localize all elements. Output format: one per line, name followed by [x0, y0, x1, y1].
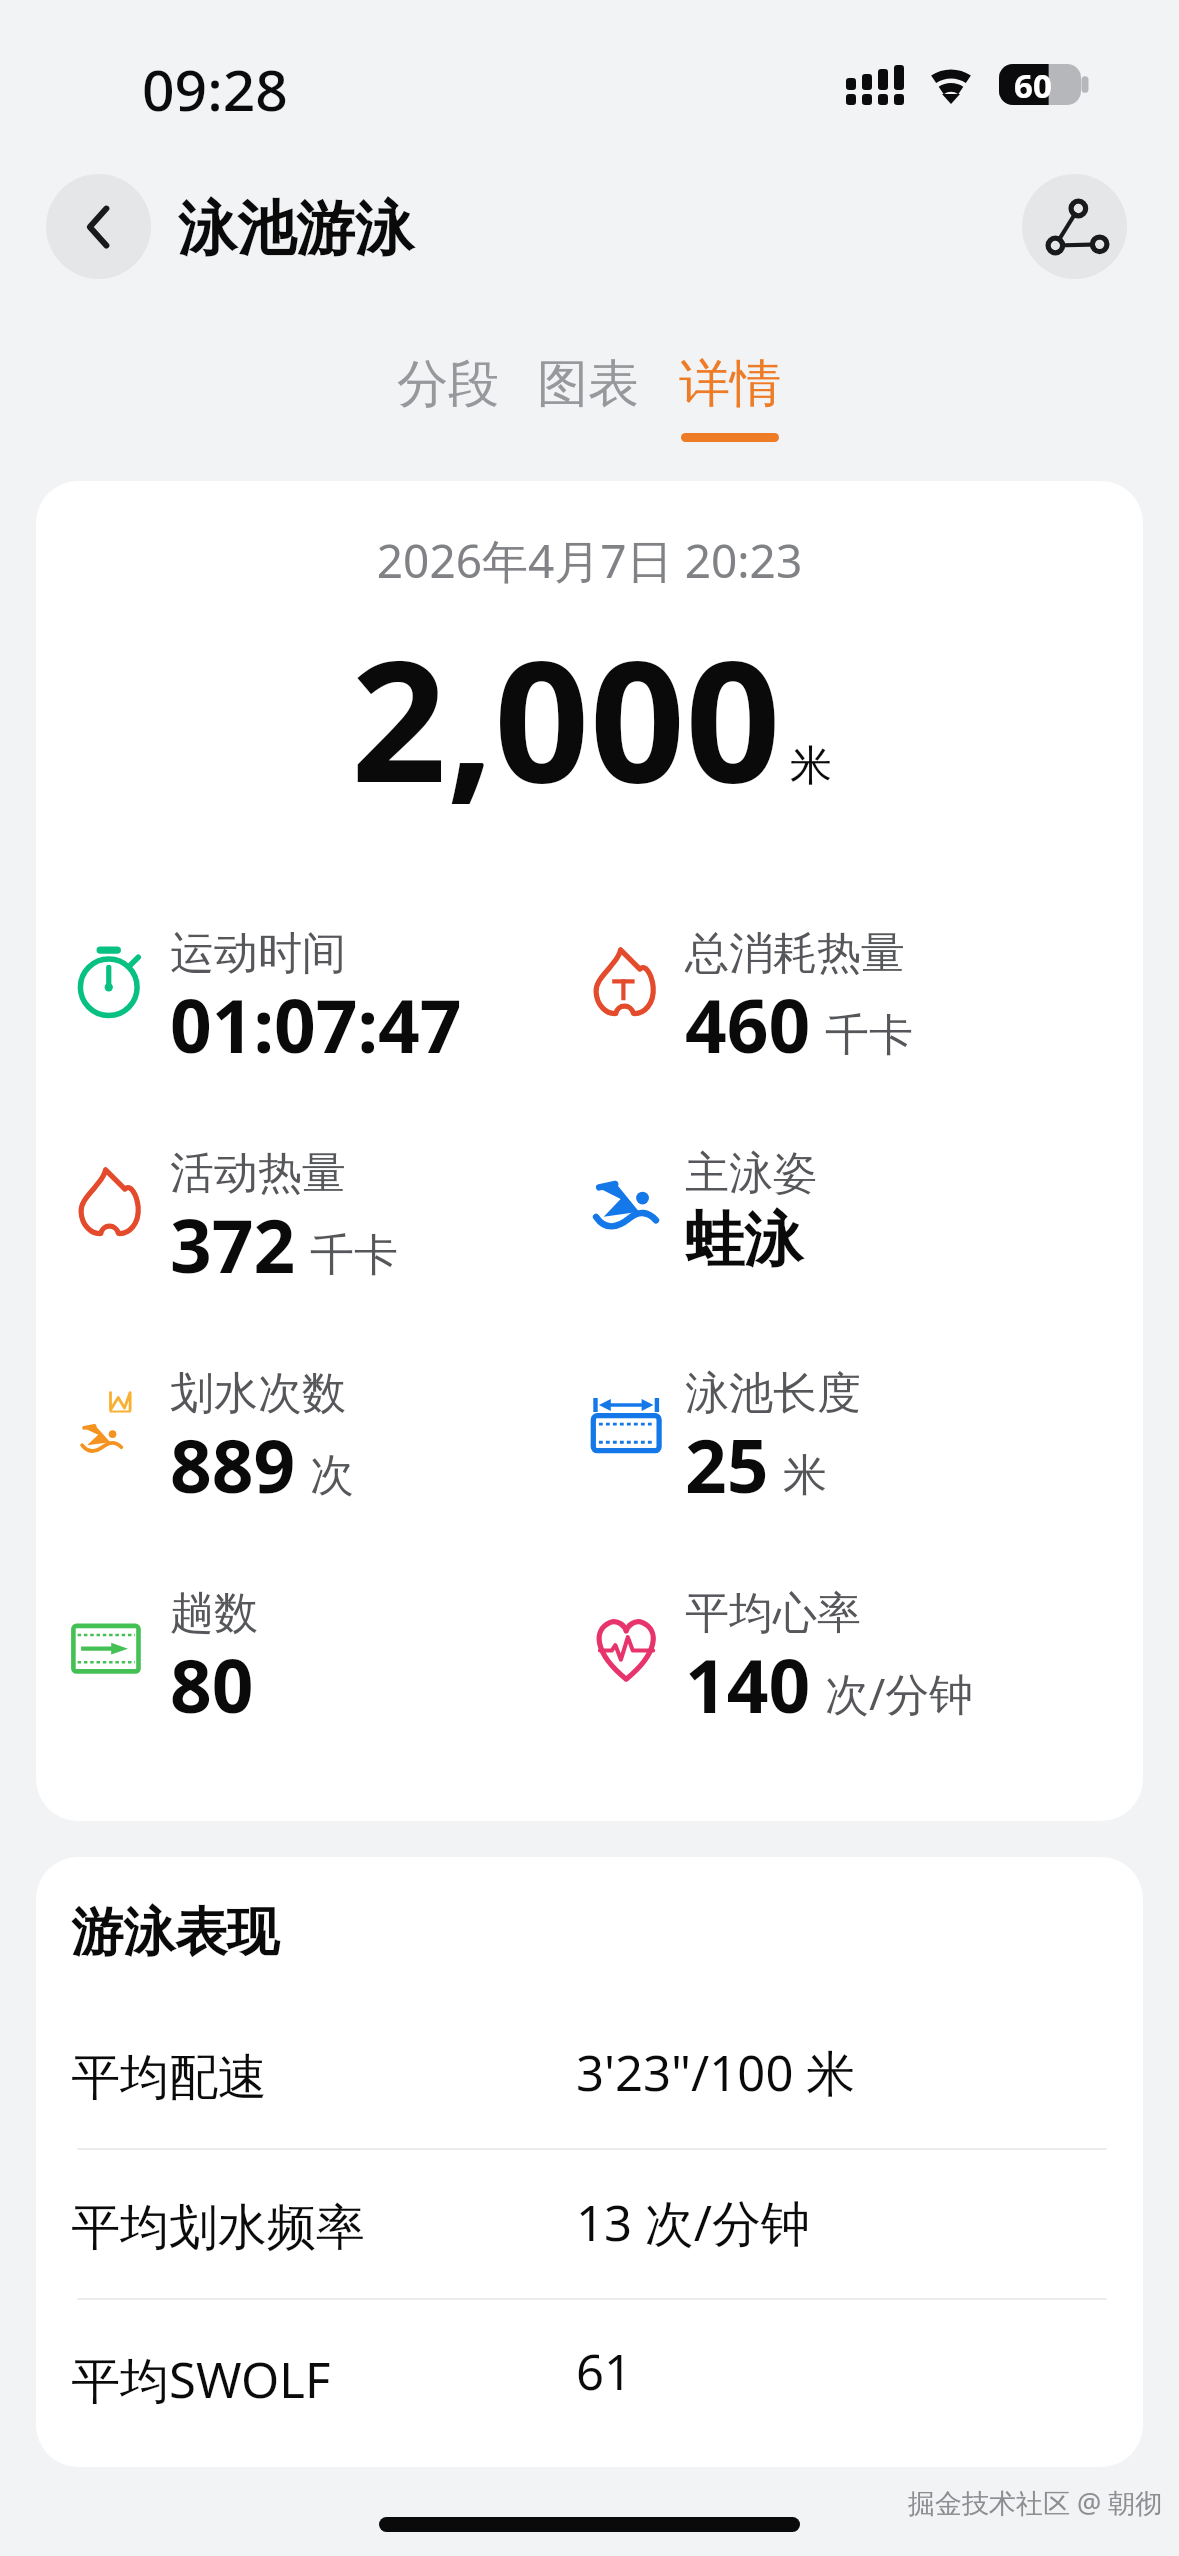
staticText: 460: [685, 975, 811, 1074]
staticText: 趟数: [170, 1586, 258, 1641]
staticText: 泳池游泳: [178, 192, 414, 266]
staticText: 米: [790, 740, 832, 793]
staticText: 2026年4月7日 20:23: [36, 529, 1143, 592]
staticText: 运动时间: [170, 926, 346, 981]
staticText: 3'23"/100 米: [576, 2039, 856, 2106]
staticText: 主泳姿: [685, 1146, 817, 1201]
staticText: 平均心率: [685, 1586, 861, 1641]
button[interactable]: 平均SWOLF: [36, 2305, 1143, 2455]
staticText: 游泳表现: [71, 1900, 279, 1966]
staticText: 详情: [679, 352, 781, 416]
staticText: 米: [783, 1448, 827, 1503]
staticText: 蛙泳: [685, 1203, 803, 1277]
staticText: 千卡: [310, 1228, 398, 1283]
staticText: 次: [310, 1448, 354, 1503]
staticText: 140: [685, 1635, 811, 1734]
staticText: 2,000: [351, 603, 781, 830]
staticText: 889: [170, 1415, 296, 1514]
staticText: 60: [1014, 63, 1052, 104]
staticText: 01:07:47: [170, 975, 462, 1074]
staticText: 次/分钟: [825, 1663, 974, 1723]
staticText: 平均SWOLF: [71, 2346, 611, 2413]
button[interactable]: 图表: [526, 352, 649, 433]
button[interactable]: 平均划水频率: [36, 2156, 1143, 2306]
staticText: 09:28: [142, 50, 288, 128]
staticText: 80: [170, 1635, 254, 1734]
staticText: 千卡: [825, 1008, 913, 1063]
button[interactable]: Share: [1022, 174, 1127, 279]
staticText: 总消耗热量: [685, 926, 905, 981]
staticText: 25: [685, 1415, 769, 1514]
button[interactable]: Back: [46, 174, 151, 279]
staticText: 61: [576, 2338, 633, 2405]
staticText: 活动热量: [170, 1146, 346, 1201]
staticText: 图表: [537, 352, 639, 416]
staticText: 372: [170, 1195, 296, 1294]
button[interactable]: 详情: [668, 352, 791, 442]
staticText: 平均配速: [71, 2047, 611, 2109]
staticText: 平均划水频率: [71, 2197, 611, 2259]
staticText: 划水次数: [170, 1366, 346, 1421]
staticText: 掘金技术社区 @ 朝彻: [908, 2484, 1163, 2521]
button[interactable]: 分段: [386, 352, 509, 433]
staticText: 13 次/分钟: [576, 2189, 811, 2256]
staticText: 分段: [397, 352, 499, 416]
staticText: 泳池长度: [685, 1366, 861, 1421]
button[interactable]: 平均配速: [36, 2006, 1143, 2156]
